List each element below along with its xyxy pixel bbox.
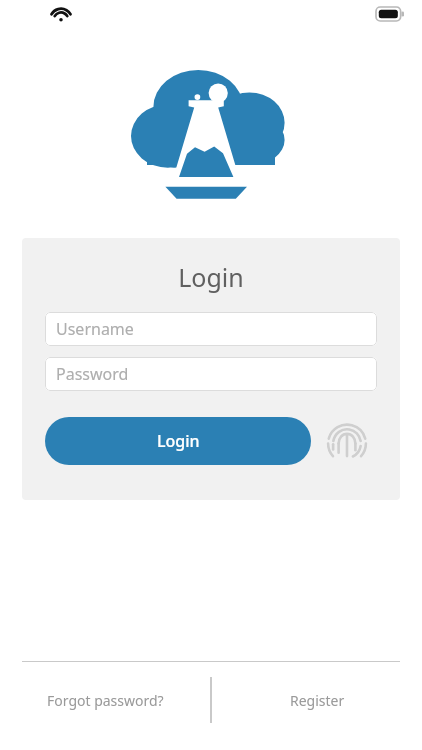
staticText: Username bbox=[56, 318, 134, 340]
button[interactable]: Username bbox=[45, 312, 377, 346]
button[interactable]: Forgot password? bbox=[0, 670, 210, 730]
staticText: Password bbox=[56, 363, 129, 385]
button[interactable]: Register bbox=[212, 670, 422, 730]
button[interactable]: Password bbox=[45, 357, 377, 391]
staticText: Login bbox=[22, 260, 400, 294]
staticText: Register bbox=[290, 691, 345, 710]
button[interactable]: Login with fingerprint bbox=[321, 415, 373, 467]
staticText: Forgot password? bbox=[47, 691, 164, 710]
button[interactable]: Login bbox=[45, 417, 311, 465]
staticText: Login bbox=[157, 430, 200, 452]
